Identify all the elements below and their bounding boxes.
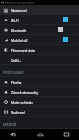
button[interactable]: Toggle <box>58 37 68 42</box>
button[interactable]: Home <box>27 129 53 140</box>
button[interactable]: Nastavení <box>0 5 79 15</box>
button[interactable]: Motiv vzhledu <box>0 97 79 107</box>
button[interactable]: Toggle <box>58 17 68 22</box>
staticText: Rozhraní <box>11 110 79 114</box>
staticText: Další... <box>11 58 79 62</box>
staticText: PŘIZPŮSOBENÍ <box>3 71 24 75</box>
button[interactable]: Toggle <box>58 27 68 32</box>
button[interactable]: Back <box>0 129 27 140</box>
staticText: ZAŘÍZENÍ <box>3 123 17 127</box>
staticText: Uklízíme: vcerejsi zaloha <box>5 1 35 5</box>
staticText: Wi-Fi <box>11 18 58 22</box>
button[interactable]: Rozhraní <box>0 107 79 117</box>
button[interactable]: Mobilní síť <box>0 35 79 45</box>
staticText: Mobilní síť <box>11 38 58 42</box>
button[interactable]: Bluetooth <box>0 25 79 35</box>
staticText: Plocha <box>11 80 79 84</box>
staticText: Nastavení <box>11 8 27 13</box>
button[interactable]: Další... <box>0 55 79 65</box>
staticText: Bluetooth <box>11 28 58 32</box>
button[interactable]: Zámek obrazovky <box>0 87 79 97</box>
button[interactable]: Plocha <box>0 77 79 87</box>
staticText: Přenesená data <box>11 48 79 52</box>
button[interactable]: Recent apps <box>53 129 79 140</box>
staticText: Zámek obrazovky <box>11 90 79 94</box>
button[interactable]: Wi-Fi <box>0 15 79 25</box>
staticText: Motiv vzhledu <box>11 100 79 104</box>
button[interactable]: Přenesená data <box>0 45 79 55</box>
